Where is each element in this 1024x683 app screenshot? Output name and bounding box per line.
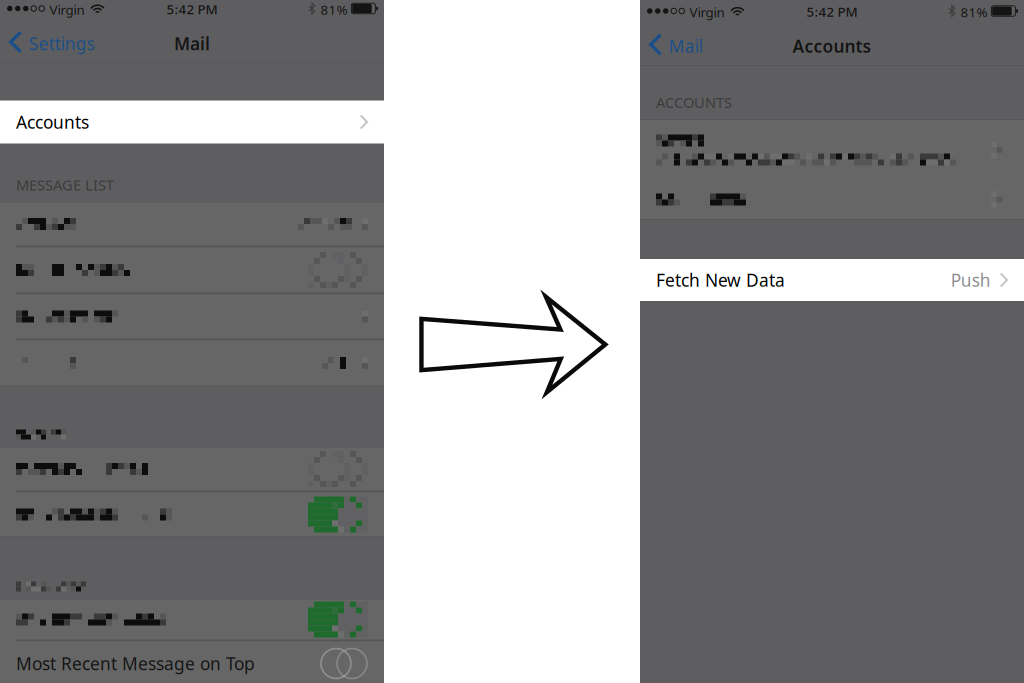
staticText: Push (951, 268, 991, 291)
staticText: Fetch New Data (656, 268, 785, 291)
staticText: 5:42 PM (166, 0, 217, 18)
staticText: 81% (960, 3, 987, 21)
staticText: MESSAGE LIST (16, 175, 114, 194)
button[interactable]: Accounts (0, 100, 384, 143)
staticText: Accounts (792, 34, 871, 57)
staticText: Virgin (49, 1, 84, 18)
staticText: Most Recent Message on Top (16, 652, 255, 675)
button[interactable]: Settings (0, 18, 101, 62)
button[interactable]: Most Recent Message on Top (0, 641, 384, 683)
button[interactable] (0, 340, 384, 385)
button[interactable] (0, 202, 384, 247)
staticText: Mail (174, 32, 210, 55)
staticText: Settings (29, 32, 95, 55)
button[interactable] (0, 247, 384, 294)
staticText: Accounts (16, 110, 89, 133)
button[interactable]: Fetch New Data (640, 259, 1024, 301)
button[interactable] (640, 180, 1024, 219)
button[interactable] (0, 492, 384, 536)
staticText: Virgin (689, 3, 724, 21)
button[interactable]: Mail (640, 21, 709, 65)
button[interactable] (0, 294, 384, 340)
staticText: 81% (320, 1, 347, 18)
button[interactable] (0, 447, 384, 492)
staticText: 5:42 PM (806, 3, 857, 20)
button[interactable] (640, 120, 1024, 180)
staticText: Mail (669, 34, 703, 57)
button[interactable] (0, 599, 384, 641)
staticText: ACCOUNTS (656, 92, 732, 112)
